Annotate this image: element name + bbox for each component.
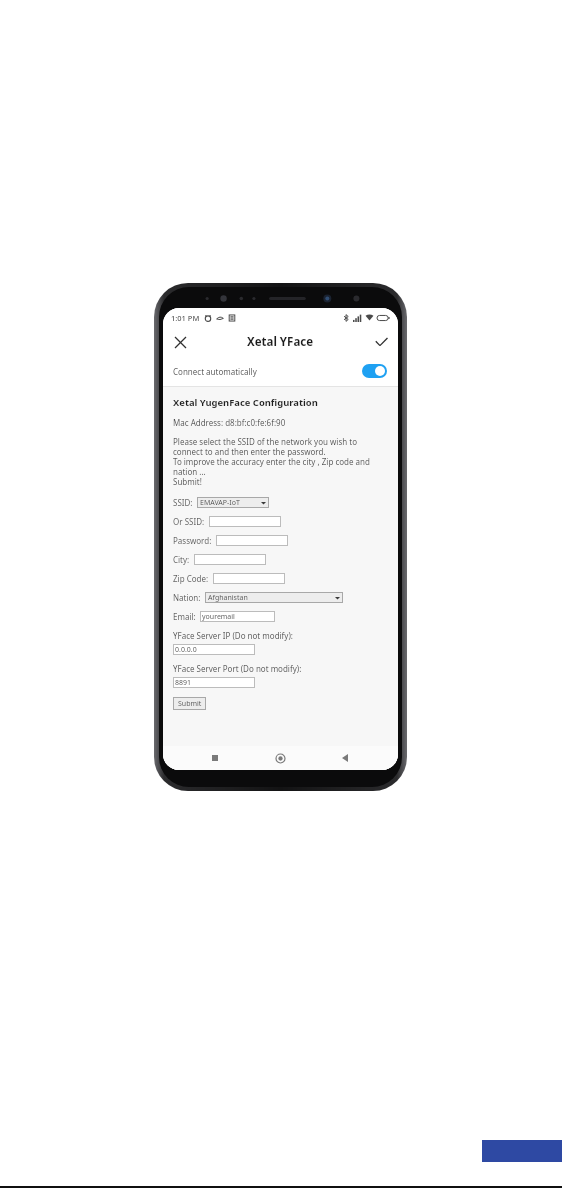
staticText: Password: — [173, 535, 212, 546]
staticText: Nation: — [173, 592, 201, 603]
button[interactable] — [209, 516, 281, 527]
button[interactable]: youremail — [200, 611, 275, 622]
staticText: Email: — [173, 611, 196, 622]
button[interactable]: 8891 — [173, 677, 255, 688]
button[interactable]: Connect automatically — [163, 356, 398, 386]
button[interactable] — [216, 535, 288, 546]
staticText: 1:01 PM — [171, 313, 200, 323]
button[interactable]: 0.0.0.0 — [173, 644, 255, 655]
button[interactable]: Submit — [173, 697, 206, 710]
button[interactable]: Confirm — [368, 329, 394, 355]
button[interactable] — [213, 573, 285, 584]
staticText: Zip Code: — [173, 573, 209, 584]
staticText: Submit — [178, 699, 202, 709]
staticText: City: — [173, 554, 190, 565]
staticText: YFace Server Port (Do not modify): — [173, 663, 302, 674]
button[interactable]: Home — [268, 746, 292, 770]
staticText: Or SSID: — [173, 516, 205, 527]
staticText: Please select the SSID of the network yo… — [173, 436, 370, 488]
staticText: Afghanistan — [208, 593, 248, 603]
button[interactable]: Back — [333, 746, 357, 770]
staticText: SSID: — [173, 497, 193, 508]
staticText: Connect automatically — [173, 366, 257, 377]
staticText: Xetal YFace — [247, 334, 314, 350]
staticText: EMAVAP-IoT — [200, 498, 240, 508]
staticText: Mac Address: d8:bf:c0:fe:6f:90 — [173, 417, 286, 428]
staticText: 8891 — [175, 678, 192, 688]
button[interactable] — [194, 554, 266, 565]
staticText: YFace Server IP (Do not modify): — [173, 630, 293, 641]
button[interactable]: Recents — [203, 746, 227, 770]
button[interactable]: Afghanistan — [205, 592, 343, 603]
staticText: youremail — [202, 612, 235, 622]
staticText: Xetal YugenFace Configuration — [173, 396, 318, 409]
button[interactable]: Close — [167, 329, 193, 355]
staticText: 0.0.0.0 — [175, 645, 197, 655]
button[interactable]: EMAVAP-IoT — [197, 497, 269, 508]
